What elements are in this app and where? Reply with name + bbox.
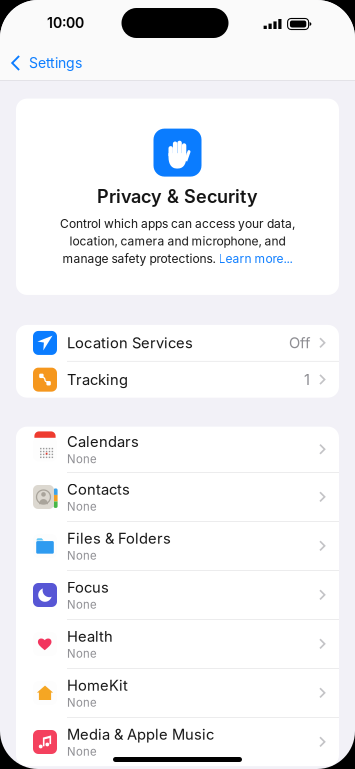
button[interactable]: Media & Apple Music xyxy=(16,718,339,766)
button[interactable]: Focus xyxy=(16,571,339,619)
staticText: None xyxy=(67,647,97,660)
staticText: 1 xyxy=(304,371,310,388)
staticText: Location Services xyxy=(67,334,193,352)
staticText: HomeKit xyxy=(67,676,128,694)
button[interactable]: Calendars xyxy=(16,427,339,472)
staticText: Learn more... xyxy=(218,251,292,266)
button[interactable]: HomeKit xyxy=(16,669,339,717)
button[interactable]: Contacts xyxy=(16,473,339,521)
staticText: location, camera and microphone, and xyxy=(69,234,285,248)
staticText: None xyxy=(67,452,97,466)
staticText: Calendars xyxy=(67,433,139,451)
staticText: Off xyxy=(289,334,310,352)
staticText: Tracking xyxy=(67,371,128,388)
staticText: Health xyxy=(67,627,113,645)
staticText: Settings xyxy=(29,54,82,71)
button[interactable]: Settings xyxy=(0,48,82,77)
staticText: None xyxy=(67,549,97,562)
staticText: 10:00 xyxy=(47,14,84,31)
button[interactable]: Location Services xyxy=(16,325,339,361)
staticText: Focus xyxy=(67,578,109,596)
staticText: None xyxy=(67,598,97,611)
staticText: Control which apps can access your data, xyxy=(60,216,295,231)
staticText: manage safety protections. xyxy=(62,251,218,266)
staticText: None xyxy=(67,745,97,758)
button[interactable]: Files & Folders xyxy=(16,522,339,570)
staticText: None xyxy=(67,500,97,513)
staticText: Privacy & Security xyxy=(97,186,258,207)
button[interactable]: Tracking xyxy=(16,362,339,398)
staticText: Files & Folders xyxy=(67,529,171,547)
button[interactable]: Health xyxy=(16,620,339,668)
button[interactable]: Learn more... xyxy=(218,251,292,266)
staticText: None xyxy=(67,696,97,709)
staticText: Media & Apple Music xyxy=(67,725,214,743)
staticText: Contacts xyxy=(67,480,130,498)
